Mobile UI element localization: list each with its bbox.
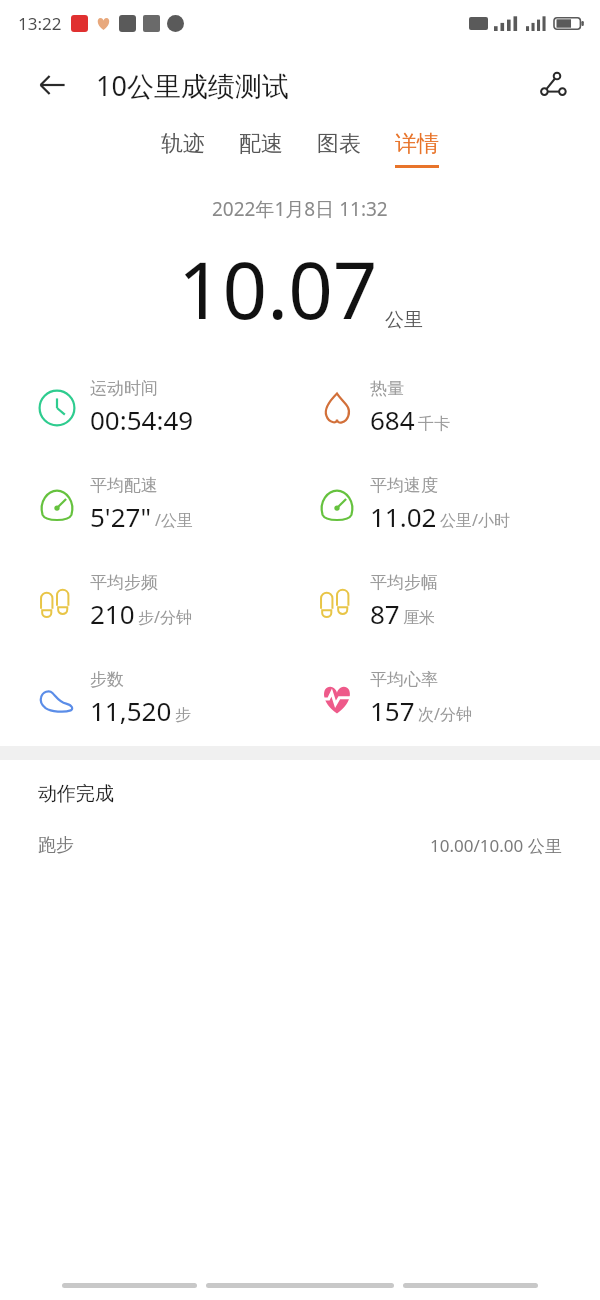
staticText: 步/分钟 — [138, 606, 192, 628]
button[interactable]: 跑步 — [0, 834, 600, 857]
staticText: 跑步 — [38, 834, 74, 857]
staticText: 平均步幅 — [370, 572, 438, 593]
staticText: 13:22 — [18, 12, 62, 35]
staticText: 684 — [370, 402, 415, 437]
staticText: 公里/小时 — [440, 509, 510, 531]
button[interactable]: Home — [206, 1283, 394, 1288]
staticText: /公里 — [155, 509, 193, 531]
staticText: 千卡 — [418, 414, 450, 434]
staticText: 平均步频 — [90, 572, 158, 593]
staticText: 平均心率 — [370, 669, 438, 690]
button[interactable]: 平均配速 — [36, 475, 193, 534]
button[interactable]: 配速 — [233, 124, 289, 174]
staticText: 步数 — [90, 669, 124, 690]
staticText: 公里 — [385, 308, 423, 332]
staticText: 轨迹 — [161, 130, 205, 158]
staticText: 10.07 — [178, 236, 378, 342]
staticText: 157 — [370, 693, 415, 728]
button[interactable]: 平均心率 — [316, 669, 472, 728]
button[interactable]: 平均步频 — [36, 572, 192, 631]
staticText: 配速 — [239, 130, 283, 158]
button[interactable]: 详情 — [389, 124, 445, 174]
staticText: 图表 — [317, 130, 361, 158]
button[interactable]: Back — [28, 61, 76, 109]
button[interactable]: 平均速度 — [316, 475, 510, 534]
button[interactable]: 热量 — [316, 378, 450, 437]
staticText: 热量 — [370, 378, 404, 399]
staticText: 厘米 — [403, 608, 435, 628]
staticText: 10.00/10.00 公里 — [430, 834, 562, 857]
button[interactable]: Back — [403, 1283, 538, 1288]
button[interactable]: Recents — [62, 1283, 197, 1288]
staticText: 次/分钟 — [418, 703, 472, 725]
staticText: 00:54:49 — [90, 402, 194, 437]
staticText: 动作完成 — [38, 782, 114, 806]
button[interactable]: 平均步幅 — [316, 572, 438, 631]
button[interactable]: 轨迹 — [155, 124, 211, 174]
staticText: 平均速度 — [370, 475, 438, 496]
staticText: 5'27" — [90, 499, 152, 534]
button[interactable]: 步数 — [36, 669, 191, 728]
staticText: 210 — [90, 596, 135, 631]
staticText: 87 — [370, 596, 400, 631]
staticText: 11,520 — [90, 693, 172, 728]
button[interactable]: Share — [530, 61, 578, 109]
staticText: 10公里成绩测试 — [96, 67, 289, 104]
staticText: 详情 — [395, 130, 439, 158]
button[interactable]: 运动时间 — [36, 378, 194, 437]
staticText: 运动时间 — [90, 378, 158, 399]
button[interactable]: 图表 — [311, 124, 367, 174]
staticText: 2022年1月8日 11:32 — [212, 196, 388, 222]
staticText: 步 — [175, 705, 191, 725]
staticText: 11.02 — [370, 499, 437, 534]
staticText: 平均配速 — [90, 475, 158, 496]
